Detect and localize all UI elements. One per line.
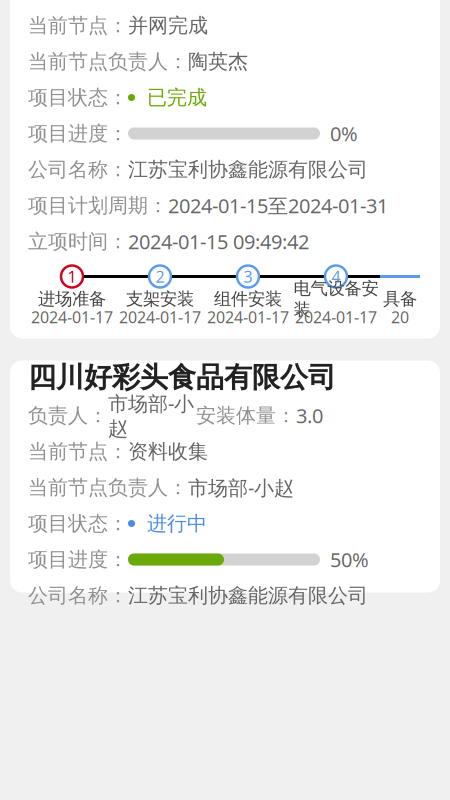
button[interactable]: 焦作市德邦科技有限公司 — [10, 0, 440, 338]
staticText: 项目进度： — [28, 121, 128, 146]
staticText: 当前节点负责人： — [28, 475, 188, 500]
staticText: 具备 — [383, 288, 417, 310]
staticText: 安装体量： — [196, 403, 296, 428]
staticText: 并网完成 — [128, 13, 208, 38]
staticText: 市场部-小赵 — [188, 474, 294, 501]
staticText: 进场准备 — [38, 288, 106, 310]
staticText: 3.0 — [296, 402, 323, 429]
staticText: 2024-01-17 — [207, 306, 289, 328]
staticText: 市场部-小赵 — [108, 390, 194, 441]
staticText: 电气设备安装 — [293, 278, 378, 320]
staticText: 2 — [155, 266, 164, 287]
staticText: 项目计划周期： — [28, 193, 168, 218]
staticText: 当前节点负责人： — [28, 49, 188, 74]
staticText: 江苏宝利协鑫能源有限公司 — [128, 157, 368, 182]
staticText: 公司名称： — [28, 583, 128, 608]
staticText: 2024-01-15至2024-01-31 — [168, 192, 388, 219]
staticText: 2024-01-17 — [31, 306, 113, 328]
staticText: 项目状态： — [28, 85, 128, 110]
staticText: 陶英杰 — [188, 49, 248, 74]
staticText: 4 — [331, 266, 340, 287]
staticText: 组件安装 — [214, 288, 282, 310]
staticText: 当前节点： — [28, 13, 128, 38]
staticText: 支架安装 — [126, 288, 194, 310]
staticText: 江苏宝利协鑫能源有限公司 — [128, 583, 368, 608]
staticText: 项目进度： — [28, 547, 128, 572]
staticText: 2024-01-17 — [295, 306, 377, 328]
staticText: 3 — [243, 266, 252, 287]
staticText: 50% — [320, 546, 369, 573]
staticText: 1 — [67, 266, 76, 287]
staticText: 当前节点： — [28, 439, 128, 464]
staticText: 进行中 — [135, 511, 207, 536]
staticText: 0% — [320, 120, 358, 147]
staticText: 公司名称： — [28, 157, 128, 182]
staticText: 2024-01-17 — [119, 306, 201, 328]
staticText: 四川好彩头食品有限公司 — [28, 360, 336, 395]
staticText: 负责人： — [28, 403, 108, 428]
staticText: 资料收集 — [128, 439, 208, 464]
staticText: 20 — [391, 306, 409, 328]
staticText: 已完成 — [135, 85, 207, 110]
staticText: 立项时间： — [28, 229, 128, 254]
staticText: 项目状态： — [28, 511, 128, 536]
button[interactable]: 四川好彩头食品有限公司 — [10, 360, 440, 592]
staticText: 2024-01-15 09:49:42 — [128, 228, 309, 255]
